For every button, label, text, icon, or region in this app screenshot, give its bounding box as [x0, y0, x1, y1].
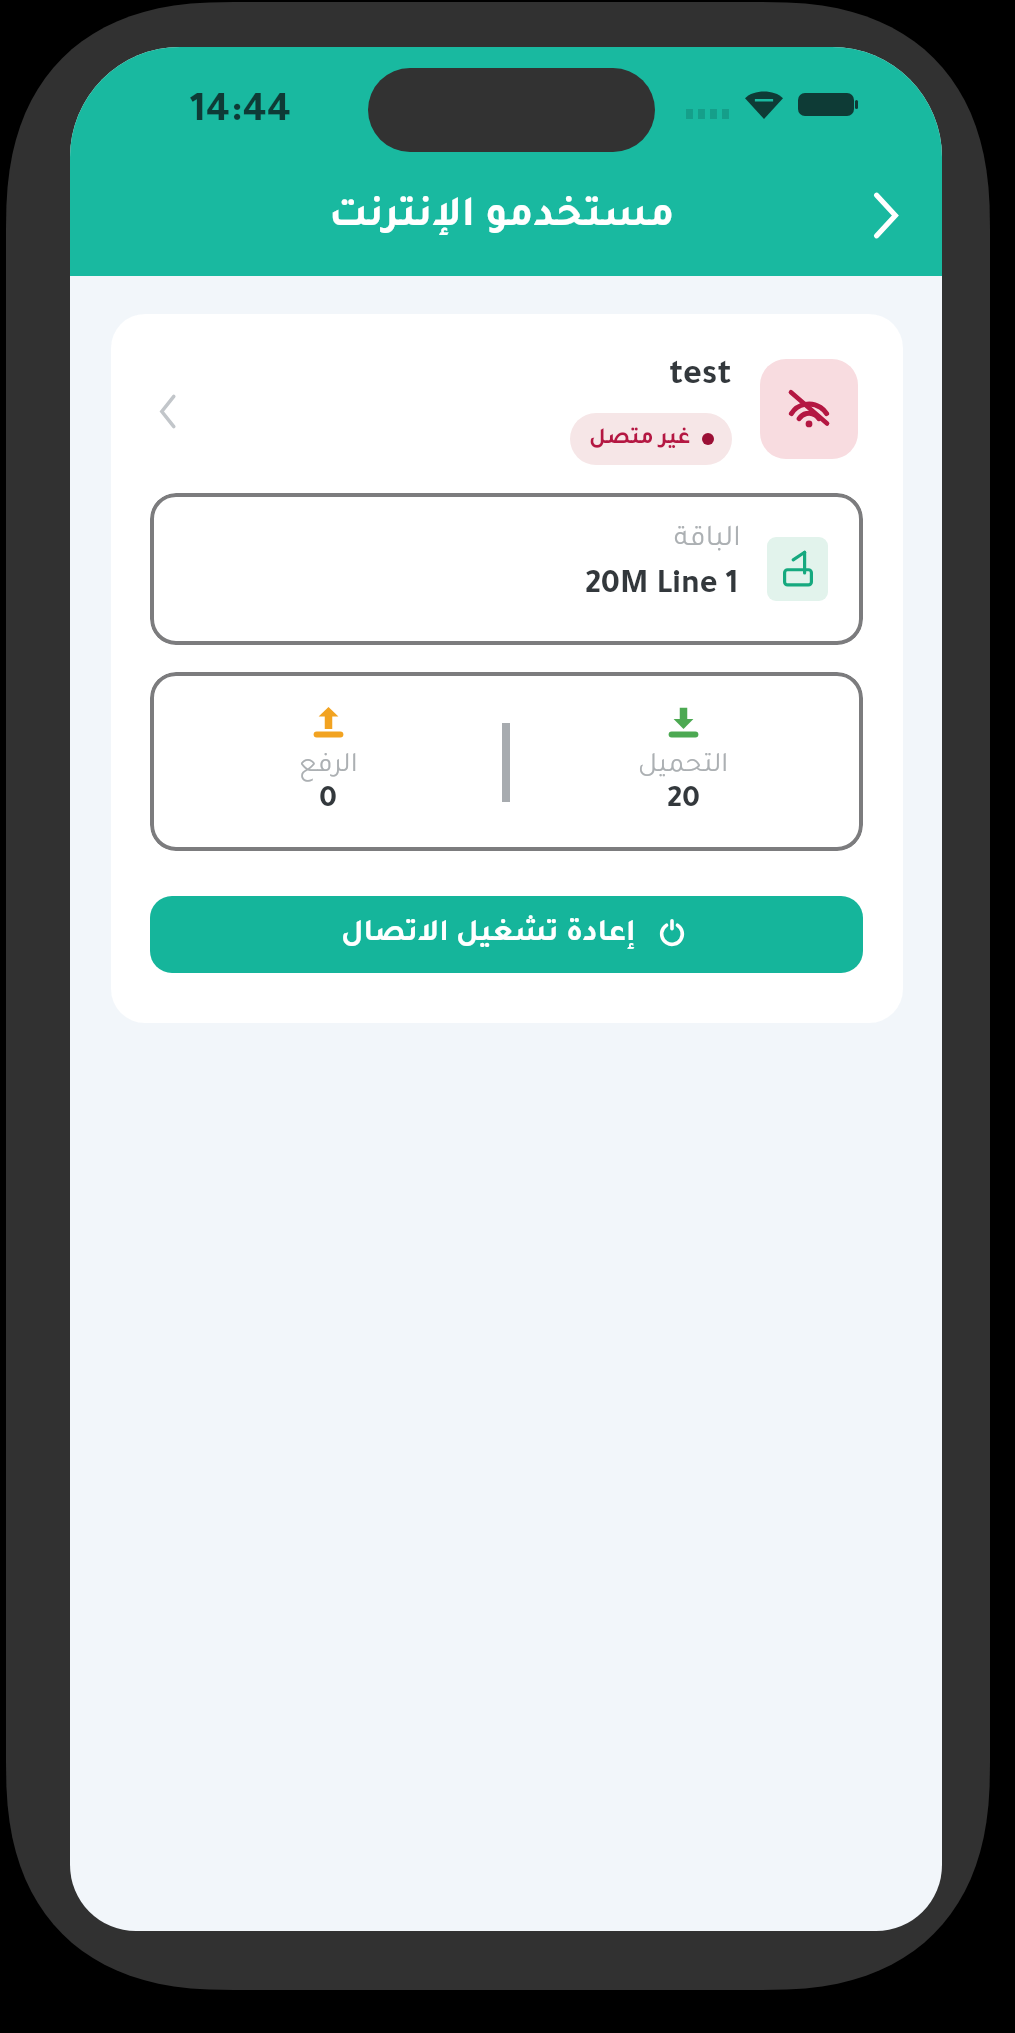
button[interactable]: الباقة [150, 493, 863, 645]
staticText: 0 [319, 785, 338, 817]
staticText: 20 [667, 785, 700, 817]
button[interactable]: غير متصل [570, 413, 732, 465]
staticText: غير متصل [589, 428, 691, 451]
staticText: الباقة [674, 526, 741, 556]
button[interactable]: Next [856, 185, 916, 245]
staticText: التحميل [638, 753, 729, 781]
staticText: 14:44 [190, 92, 291, 135]
staticText: إعادة تشغيل الاتصال [341, 920, 636, 951]
button[interactable]: Details [143, 380, 191, 442]
staticText: الرفع [299, 753, 358, 781]
staticText: test [669, 360, 732, 396]
button[interactable]: إعادة تشغيل الاتصال [150, 896, 863, 973]
staticText: مستخدمو الإنترنت [329, 197, 675, 240]
staticText: 20M Line 1 [585, 570, 739, 604]
button[interactable]: Disconnected [760, 359, 858, 459]
